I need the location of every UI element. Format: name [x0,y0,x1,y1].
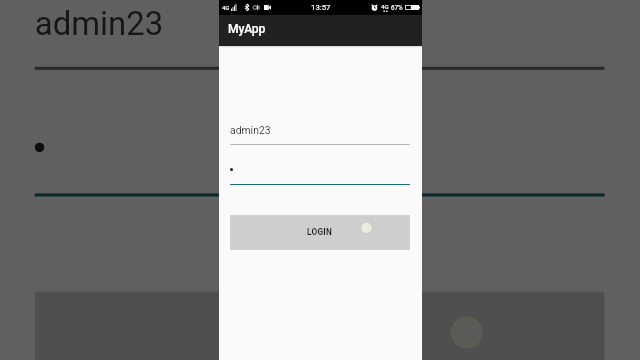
button[interactable]: Password field [230,155,410,185]
staticText: 13:57 [311,3,331,12]
staticText: 4G [381,3,389,10]
staticText: LOGIN [307,227,333,237]
staticText: 4G [222,4,230,11]
staticText: MyApp [228,22,266,36]
button[interactable]: Username field [230,115,410,145]
staticText: 67% [391,4,403,11]
button[interactable]: LOGIN [35,291,604,360]
button[interactable]: Password field [35,102,604,196]
button[interactable]: Username field [35,0,604,70]
staticText: admin23 [230,124,271,136]
button[interactable]: LOGIN [230,215,410,250]
staticText: admin23 [35,3,165,41]
